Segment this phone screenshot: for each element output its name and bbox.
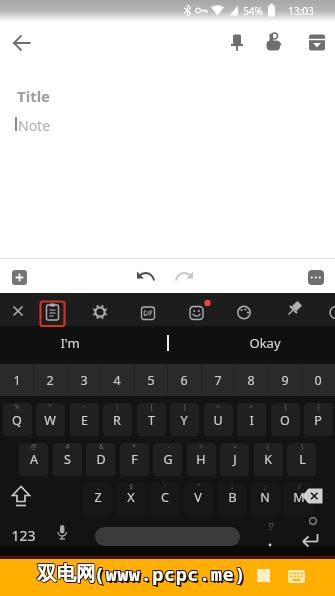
button[interactable] [137,403,166,436]
button[interactable] [19,443,48,476]
button[interactable] [217,483,246,516]
button[interactable] [237,403,266,436]
button[interactable] [301,27,333,59]
staticText: (www.pcpc.me) [95,563,248,588]
staticText: (www.pcpc.me) [94,562,247,587]
button[interactable] [184,483,213,516]
staticText: Q [12,412,22,429]
staticText: 双电网 [37,562,96,587]
button[interactable] [295,522,335,554]
button[interactable] [95,527,240,546]
staticText: # [65,442,70,451]
staticText: W [44,412,56,429]
button[interactable] [322,296,335,326]
staticText: (www.pcpc.me) [94,563,247,588]
button[interactable] [288,570,305,583]
button[interactable] [38,296,66,326]
staticText: _ [97,482,100,491]
button[interactable] [86,443,115,476]
button[interactable] [287,443,316,476]
staticText: 13:03 [288,4,314,18]
staticText: = [233,442,237,451]
button[interactable] [230,296,258,326]
staticText: 双电网 [36,561,95,586]
button[interactable] [67,364,100,396]
button[interactable] [2,522,46,554]
staticText: ) [301,442,303,451]
button[interactable] [117,483,146,516]
staticText: ; [264,482,266,491]
button[interactable] [134,296,162,326]
button[interactable] [220,443,249,476]
button[interactable] [6,27,38,59]
staticText: 双电网 [36,560,95,585]
button[interactable] [221,27,253,59]
staticText: T [148,412,155,429]
staticText: R [113,412,121,429]
button[interactable] [308,270,324,285]
button[interactable] [2,482,47,516]
button[interactable] [187,443,216,476]
button[interactable] [271,403,300,436]
staticText: 5 [147,372,155,389]
staticText: 双电网 [37,560,96,585]
button[interactable] [201,364,234,396]
staticText: 8 [247,372,255,389]
staticText: > [249,402,253,411]
staticText: (www.pcpc.me) [95,562,248,587]
button[interactable] [3,403,32,436]
staticText: 54% [243,4,263,18]
button[interactable] [86,296,114,326]
button[interactable] [225,328,305,358]
button[interactable] [53,443,82,476]
button[interactable] [120,443,149,476]
staticText: I'm [60,334,80,352]
button[interactable] [34,364,67,396]
staticText: (www.pcpc.me) [95,561,248,586]
button[interactable] [290,482,335,516]
staticText: " [197,482,200,491]
button[interactable] [204,403,233,436]
staticText: 0 [314,372,322,389]
button[interactable] [4,296,32,326]
button[interactable] [254,443,283,476]
staticText: (www.pcpc.me) [93,561,246,586]
button[interactable] [170,403,199,436]
staticText: ^ [48,402,52,411]
button[interactable] [48,522,78,554]
button[interactable] [30,328,110,358]
button[interactable] [101,364,134,396]
staticText: V [194,489,202,506]
button[interactable] [153,443,182,476]
button[interactable] [182,296,210,326]
button[interactable] [278,296,306,326]
button[interactable] [235,364,268,396]
button[interactable] [70,403,99,436]
staticText: 1 [13,372,21,389]
button[interactable] [83,483,112,516]
staticText: 9 [281,372,289,389]
staticText: ~ [82,402,86,411]
staticText: ' [164,482,166,491]
button[interactable] [250,522,290,554]
button[interactable] [284,483,313,516]
staticText: (www.pcpc.me) [96,564,249,589]
button[interactable] [134,364,167,396]
staticText: 双电网 [38,562,97,587]
button[interactable] [258,27,290,59]
button[interactable] [168,364,201,396]
button[interactable] [268,364,301,396]
button[interactable] [36,403,65,436]
button[interactable] [302,364,335,396]
button[interactable] [0,364,33,396]
button[interactable] [304,403,333,436]
button[interactable] [251,483,280,516]
button[interactable] [171,261,203,293]
button[interactable] [129,261,161,293]
button[interactable] [150,483,179,516]
staticText: Okay [249,334,281,352]
button[interactable] [12,270,27,285]
staticText: / [298,482,301,491]
button[interactable] [103,403,132,436]
staticText: F [131,451,138,468]
